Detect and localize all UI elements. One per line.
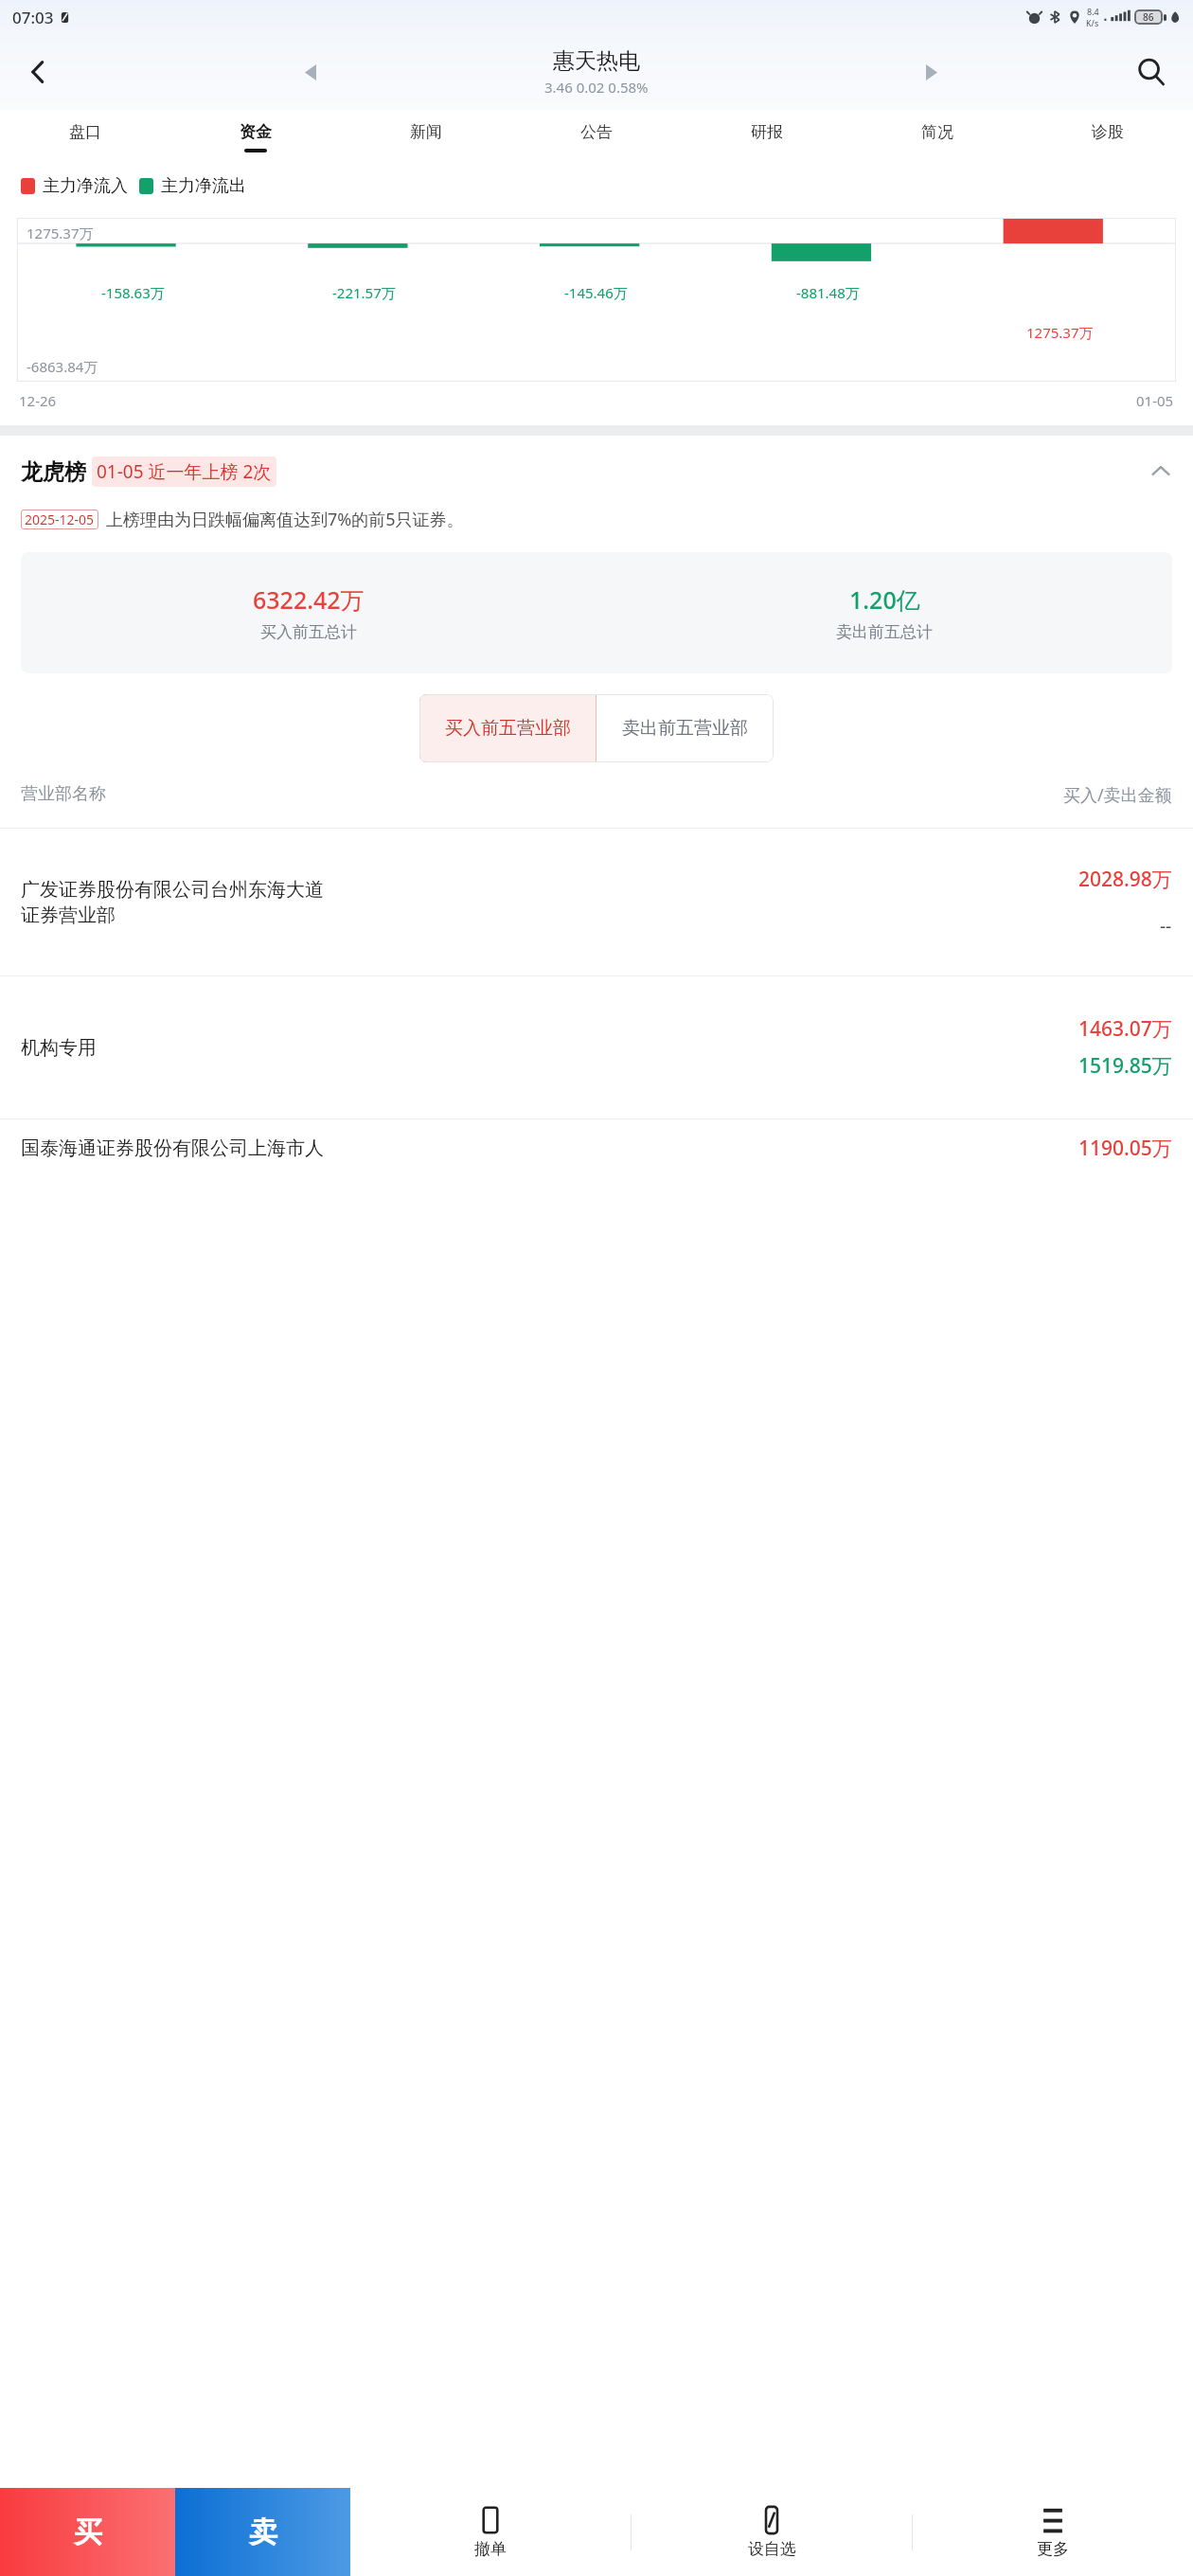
staticText: 买入/卖出金额	[1063, 783, 1172, 807]
staticText: 买	[74, 2514, 102, 2550]
button[interactable]: 设自选	[632, 2488, 912, 2576]
button[interactable]: 机构专用	[0, 976, 1193, 1118]
staticText: 国泰海通证券股份有限公司上海市人	[21, 1136, 324, 1160]
button[interactable]: 公告	[511, 110, 682, 154]
staticText: 主力净流出	[161, 175, 246, 197]
staticText: 1190.05万	[1078, 1135, 1172, 1162]
button[interactable]: 研报	[682, 110, 852, 154]
staticText: 6322.42万	[253, 583, 365, 616]
staticText: 07:03	[12, 7, 54, 28]
staticText: 公告	[580, 122, 613, 142]
staticText: 1519.85万	[1078, 1052, 1172, 1080]
staticText: 2028.98万	[1078, 866, 1172, 893]
staticText: 1463.07万	[1078, 1015, 1172, 1043]
staticText: 1.20亿	[849, 583, 920, 616]
staticText: 诊股	[1092, 122, 1124, 142]
button[interactable]: Search	[1121, 42, 1182, 102]
button[interactable]: 国泰海通证券股份有限公司上海市人	[0, 1119, 1193, 1176]
staticText: 主力净流入	[43, 175, 128, 197]
button[interactable]: 卖出前五营业部	[596, 694, 774, 762]
staticText: 撤单	[474, 2539, 507, 2559]
staticText: 新闻	[410, 122, 442, 142]
button[interactable]: Previous stock	[284, 45, 337, 98]
staticText: -158.63万	[101, 283, 165, 302]
staticText: 机构专用	[21, 1036, 97, 1060]
staticText: -6863.84万	[27, 357, 98, 376]
button[interactable]: 卖	[175, 2488, 350, 2576]
staticText: -881.48万	[796, 283, 860, 302]
other: Collapse	[1149, 460, 1172, 483]
button[interactable]: 更多	[913, 2488, 1193, 2576]
staticText: 惠天热电	[553, 47, 640, 75]
staticText: 买入前五总计	[260, 622, 357, 642]
button[interactable]: 龙虎榜	[21, 456, 1172, 487]
button[interactable]: 买	[0, 2488, 175, 2576]
staticText: 更多	[1037, 2539, 1069, 2559]
staticText: 1275.37万	[1026, 323, 1094, 342]
button[interactable]: 新闻	[341, 110, 511, 154]
staticText: 盘口	[69, 122, 101, 142]
staticText: 上榜理由为日跌幅偏离值达到7%的前5只证券。	[106, 508, 464, 531]
staticText: 8.4	[1087, 6, 1099, 17]
staticText: 卖出前五营业部	[622, 717, 748, 740]
staticText: -221.57万	[332, 283, 396, 302]
staticText: 研报	[751, 122, 783, 142]
staticText: 资金	[240, 122, 272, 142]
staticText: 86	[1143, 10, 1154, 24]
staticText: 设自选	[748, 2539, 796, 2559]
staticText: 广发证券股份有限公司台州东海大道 证券营业部	[21, 878, 324, 927]
button[interactable]: 盘口	[0, 110, 170, 154]
button[interactable]: 买入前五营业部	[419, 694, 596, 762]
staticText: 营业部名称	[21, 783, 106, 805]
button[interactable]: 资金	[170, 110, 341, 154]
button[interactable]: 广发证券股份有限公司台州东海大道 证券营业部	[0, 829, 1193, 975]
staticText: 龙虎榜	[21, 458, 86, 486]
button[interactable]: 撤单	[350, 2488, 631, 2576]
staticText: 卖出前五总计	[836, 622, 933, 642]
staticText: 2025-12-05	[25, 510, 95, 528]
staticText: 3.46 0.02 0.58%	[544, 78, 649, 97]
staticText: 01-05	[1136, 391, 1174, 410]
staticText: 买入前五营业部	[445, 717, 571, 740]
button[interactable]: Back	[8, 42, 68, 102]
staticText: 简况	[921, 122, 953, 142]
staticText: 卖	[249, 2514, 277, 2550]
staticText: K/s	[1086, 17, 1099, 28]
button[interactable]: Next stock	[905, 45, 958, 98]
staticText: --	[1160, 914, 1172, 939]
button[interactable]: 诊股	[1023, 110, 1193, 154]
staticText: 01-05 近一年上榜 2次	[97, 459, 272, 484]
staticText: 1275.37万	[27, 224, 94, 242]
button[interactable]: 简况	[852, 110, 1023, 154]
staticText: 12-26	[19, 391, 57, 410]
staticText: -145.46万	[564, 283, 628, 302]
